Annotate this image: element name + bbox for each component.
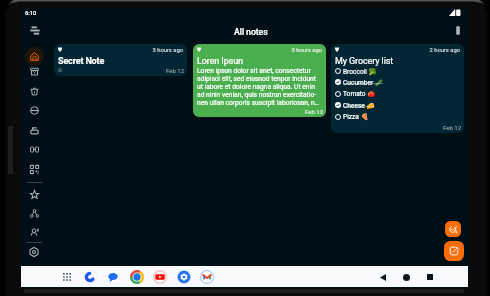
- button[interactable]: YouTube: [151, 268, 169, 286]
- button[interactable]: Loren Ipsun note: [193, 44, 326, 117]
- staticText: Cucumber 🥒: [343, 79, 384, 87]
- button[interactable]: Back: [375, 269, 391, 285]
- button[interactable]: Gmail: [198, 268, 216, 286]
- button[interactable]: Menu: [25, 20, 45, 40]
- button[interactable]: Phone: [81, 268, 99, 286]
- button[interactable]: Recent apps: [422, 269, 438, 285]
- button[interactable]: Messages: [104, 268, 122, 286]
- button[interactable]: Chrome: [128, 268, 146, 286]
- button[interactable]: Settings: [25, 243, 43, 261]
- button[interactable]: Labels: [25, 140, 43, 158]
- staticText: Broccoli 🥦: [343, 68, 377, 76]
- button[interactable]: Apps: [58, 268, 76, 286]
- staticText: 3 hours ago: [54, 47, 183, 54]
- staticText: Pizza 🍕: [343, 113, 369, 121]
- staticText: My Grocery list: [335, 56, 394, 67]
- button[interactable]: Scan code: [25, 160, 43, 178]
- button[interactable]: Share: [25, 204, 43, 222]
- staticText: Loren ipsun dolor sit anet, consectetur …: [197, 67, 320, 107]
- staticText: Feb 12: [193, 108, 323, 115]
- button[interactable]: All notes: [54, 21, 468, 42]
- button[interactable]: Favourites: [25, 185, 43, 203]
- staticText: 3 hours ago: [193, 47, 322, 54]
- button[interactable]: My Grocery list: [331, 44, 464, 133]
- staticText: Loren Ipsun: [197, 56, 243, 67]
- button[interactable]: Account: [25, 223, 43, 241]
- button[interactable]: Home: [25, 47, 44, 66]
- staticText: Cheese 🧀: [343, 102, 375, 110]
- staticText: 2 hours ago: [331, 47, 460, 54]
- button[interactable]: New note: [444, 241, 464, 261]
- button[interactable]: New checklist: [445, 221, 461, 237]
- staticText: Feb 12: [331, 124, 461, 131]
- button[interactable]: More options: [450, 22, 466, 38]
- button[interactable]: Trash: [25, 82, 43, 100]
- button[interactable]: Locked notes: [25, 121, 43, 139]
- staticText: All notes: [234, 27, 268, 37]
- staticText: Tomato 🍅: [343, 90, 376, 98]
- button[interactable]: Reminders: [25, 101, 43, 119]
- button[interactable]: Settings: [175, 268, 193, 286]
- button[interactable]: Archive: [25, 62, 43, 80]
- button[interactable]: Home: [398, 269, 414, 285]
- staticText: Secret Note: [58, 56, 105, 67]
- button[interactable]: Secret note: [54, 44, 187, 76]
- staticText: 6:10: [25, 10, 37, 17]
- staticText: Feb 12: [54, 67, 184, 74]
